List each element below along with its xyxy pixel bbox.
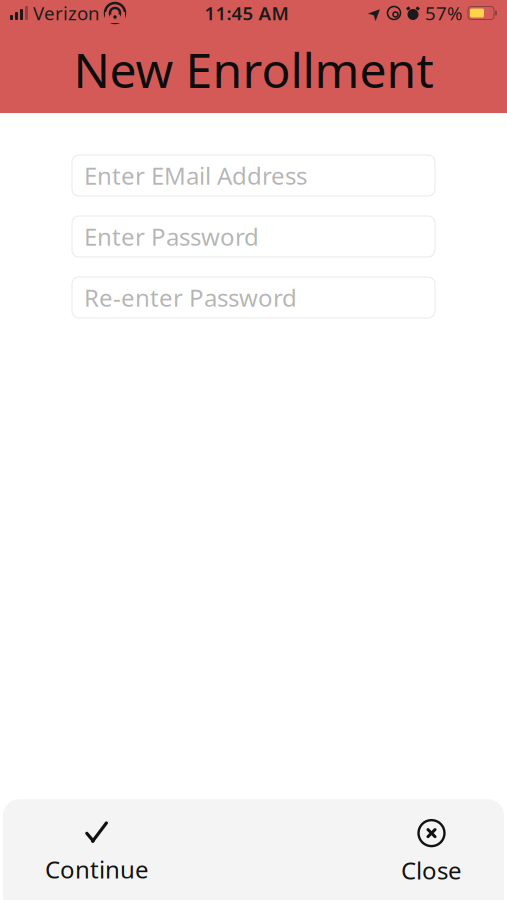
button[interactable]: Re-enter Password (72, 277, 435, 318)
staticText: 57% (425, 1, 463, 25)
staticText: 11:45 AM (204, 1, 288, 25)
button[interactable]: Enter EMail Address (72, 155, 435, 196)
staticText: Enter EMail Address (84, 160, 307, 191)
staticText: Close (401, 854, 462, 886)
staticText: New Enrollment (73, 38, 433, 101)
staticText: ➤ (367, 3, 382, 23)
button[interactable]: Close (383, 811, 480, 894)
staticText: Enter Password (84, 221, 259, 252)
button[interactable]: Continue (27, 812, 167, 893)
button[interactable]: Enter Password (72, 216, 435, 257)
staticText: Verizon (33, 1, 100, 25)
staticText: Continue (45, 853, 149, 885)
staticText: Re-enter Password (84, 282, 297, 313)
